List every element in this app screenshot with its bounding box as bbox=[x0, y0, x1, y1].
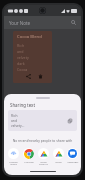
button[interactable]: Share bbox=[24, 73, 33, 80]
button[interactable]: Drive Copy to clip... bbox=[36, 148, 51, 166]
staticText: Rich bbox=[11, 113, 18, 117]
button[interactable]: Drive bbox=[51, 148, 66, 163]
button[interactable]: Cocoa Blend bbox=[13, 31, 52, 83]
staticText: Chrome bbox=[24, 160, 34, 163]
staticText: dark bbox=[17, 61, 25, 66]
staticText: and bbox=[17, 49, 24, 54]
staticText: velvety bbox=[17, 55, 29, 60]
staticText: No recent/nearby people to share with bbox=[4, 138, 81, 142]
staticText: Messages bbox=[67, 160, 79, 163]
button[interactable]: Nearby Share bbox=[6, 148, 21, 166]
button[interactable]: Delete bbox=[36, 73, 45, 80]
staticText: Nearby Share bbox=[6, 160, 21, 166]
button[interactable]: Rich bbox=[8, 110, 77, 131]
button[interactable]: Copy bbox=[66, 117, 74, 125]
button[interactable]: Search bbox=[69, 18, 78, 27]
button[interactable]: Messages bbox=[66, 148, 79, 163]
staticText: velvety... bbox=[11, 123, 25, 127]
staticText: Cocoa bbox=[17, 67, 28, 72]
staticText: Rich bbox=[17, 43, 25, 48]
staticText: Drive bbox=[55, 160, 62, 163]
staticText: Cocoa Blend bbox=[17, 34, 42, 40]
staticText: and bbox=[11, 118, 17, 122]
staticText: Sharing text bbox=[10, 102, 35, 108]
staticText: Drive Copy to clip... bbox=[36, 160, 51, 166]
button[interactable]: Chrome bbox=[21, 148, 36, 163]
staticText: Your Note bbox=[9, 20, 31, 26]
